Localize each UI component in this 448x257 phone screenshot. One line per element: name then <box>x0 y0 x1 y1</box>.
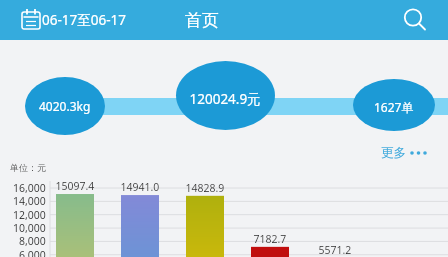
button[interactable] <box>376 140 438 162</box>
button[interactable]: Search <box>396 2 436 38</box>
button[interactable]: Select date range 06-17 to 06-17 <box>16 3 136 37</box>
